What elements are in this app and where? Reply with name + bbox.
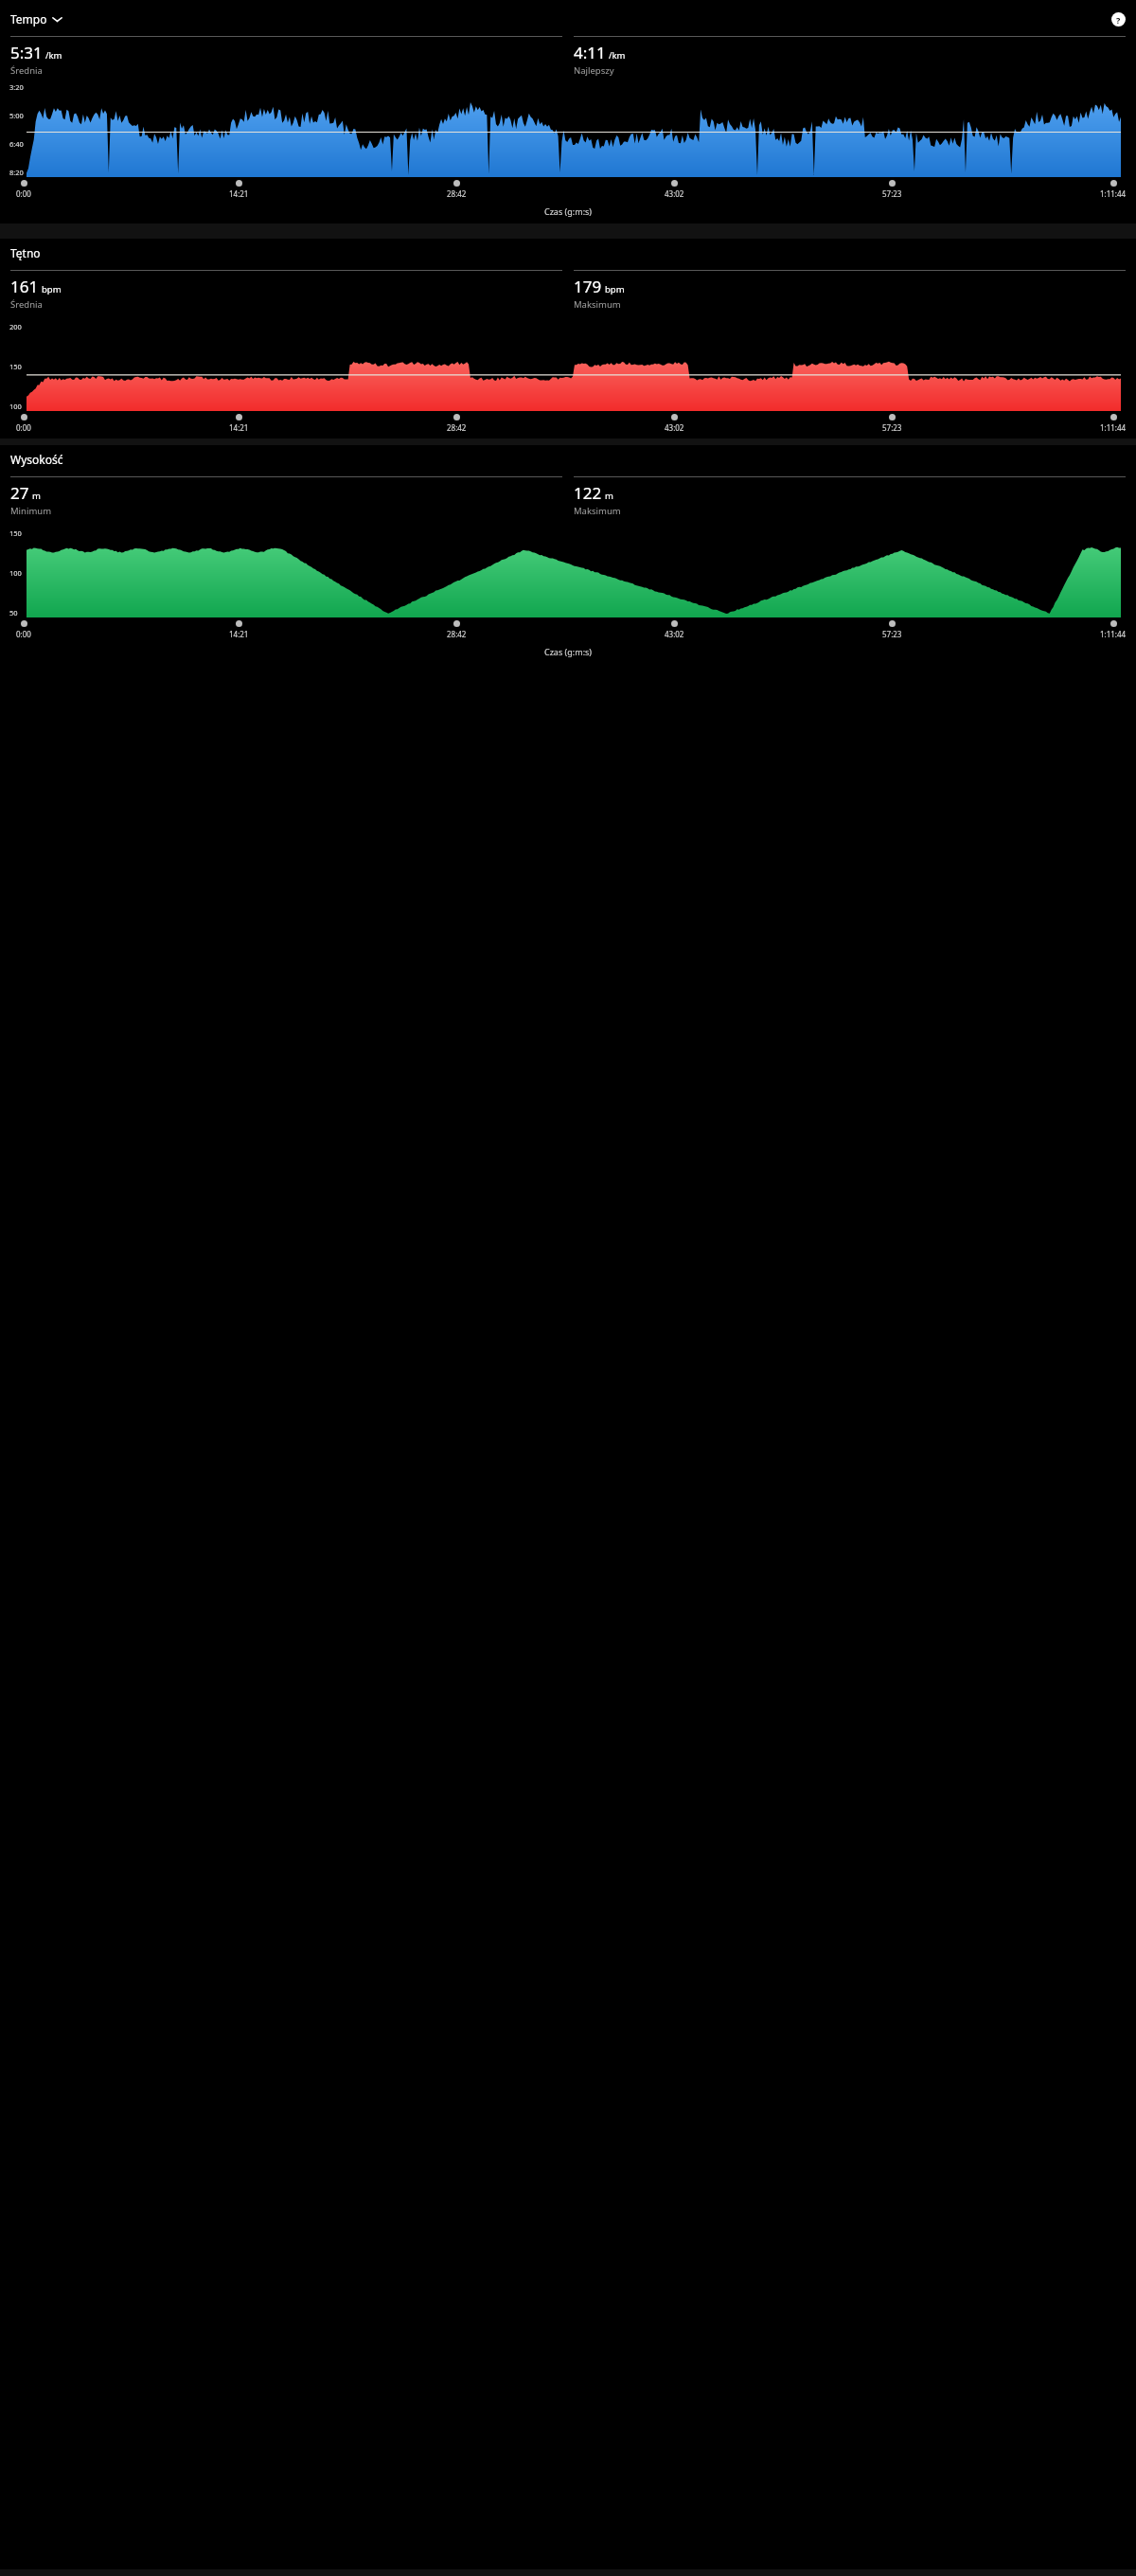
- staticText: 122: [574, 482, 602, 504]
- button[interactable]: 4:11: [574, 36, 1126, 77]
- button[interactable]: Tętno: [10, 245, 41, 260]
- staticText: 28:42: [447, 422, 467, 433]
- staticText: Najlepszy: [574, 64, 614, 77]
- staticText: Wysokość: [10, 452, 63, 467]
- staticText: 161: [10, 276, 39, 297]
- staticText: Średnia: [10, 298, 43, 311]
- staticText: 150: [9, 528, 22, 538]
- button[interactable]: 179: [574, 270, 1126, 311]
- staticText: 43:02: [665, 422, 684, 433]
- staticText: 43:02: [665, 188, 684, 199]
- staticText: 0:00: [16, 188, 31, 199]
- staticText: 50: [9, 608, 18, 617]
- button[interactable]: 161: [10, 270, 562, 311]
- staticText: 0:00: [16, 422, 31, 433]
- staticText: 1:11:44: [1100, 188, 1127, 199]
- staticText: Tempo: [10, 11, 47, 27]
- staticText: 28:42: [447, 188, 467, 199]
- staticText: 57:23: [882, 188, 902, 199]
- staticText: Średnia: [10, 64, 43, 77]
- staticText: 28:42: [447, 629, 467, 639]
- staticText: Czas (g:m:s): [0, 206, 1136, 217]
- staticText: bpm: [42, 283, 62, 295]
- staticText: 5:00: [9, 111, 24, 120]
- staticText: 0:00: [16, 629, 31, 639]
- button[interactable]: 122: [574, 476, 1126, 517]
- staticText: Czas (g:m:s): [0, 646, 1136, 657]
- staticText: 1:11:44: [1100, 422, 1127, 433]
- button[interactable]: Tempo: [10, 11, 62, 27]
- staticText: ?: [1116, 14, 1121, 26]
- staticText: 100: [9, 568, 22, 578]
- button[interactable]: Wysokość: [10, 452, 63, 467]
- staticText: Maksimum: [574, 298, 621, 311]
- button[interactable]: 27: [10, 476, 562, 517]
- staticText: 3:20: [9, 82, 24, 92]
- staticText: 4:11: [574, 42, 606, 63]
- staticText: 57:23: [882, 422, 902, 433]
- staticText: 100: [9, 402, 22, 411]
- staticText: 179: [574, 276, 602, 297]
- staticText: 57:23: [882, 629, 902, 639]
- staticText: 14:21: [229, 188, 249, 199]
- staticText: /km: [45, 49, 62, 62]
- staticText: /km: [609, 49, 626, 62]
- staticText: 14:21: [229, 422, 249, 433]
- staticText: m: [605, 490, 613, 502]
- staticText: 5:31: [10, 42, 43, 63]
- staticText: Tętno: [10, 245, 41, 260]
- staticText: Maksimum: [574, 505, 621, 517]
- staticText: m: [32, 490, 41, 502]
- button[interactable]: 5:31: [10, 36, 562, 77]
- staticText: Minimum: [10, 505, 52, 517]
- staticText: 14:21: [229, 629, 249, 639]
- button[interactable]: Pomoc: [1111, 12, 1126, 27]
- staticText: 27: [10, 482, 29, 504]
- staticText: bpm: [605, 283, 625, 295]
- staticText: 8:20: [9, 168, 24, 177]
- staticText: 6:40: [9, 139, 24, 149]
- staticText: 200: [9, 322, 22, 331]
- staticText: 43:02: [665, 629, 684, 639]
- staticText: 1:11:44: [1100, 629, 1127, 639]
- staticText: 150: [9, 362, 22, 371]
